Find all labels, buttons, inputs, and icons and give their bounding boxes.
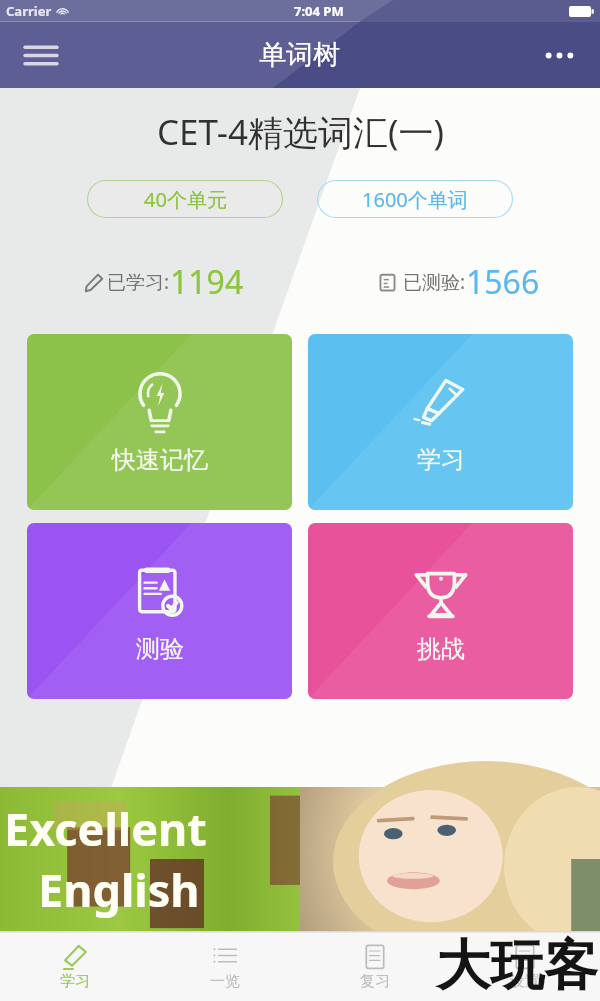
staticText: 已学习:	[107, 269, 170, 295]
staticText: 复习	[360, 972, 390, 991]
staticText: 挑战	[417, 634, 465, 664]
staticText: 学习	[60, 972, 90, 991]
button[interactable]: More options	[532, 28, 586, 82]
staticText: 测验	[136, 634, 184, 664]
staticText: 一览	[210, 972, 240, 991]
staticText: Excellent	[4, 798, 207, 859]
staticText: CET-4精选词汇(一)	[157, 108, 444, 156]
button[interactable]: Menu	[14, 28, 68, 82]
button[interactable]: 测验	[27, 523, 292, 699]
staticText: 单词树	[259, 38, 340, 72]
button[interactable]: 复习	[300, 931, 450, 1001]
button[interactable]: Excellent English banner	[0, 787, 600, 931]
staticText: 1194	[170, 260, 244, 304]
staticText: 40个单元	[144, 186, 227, 213]
button[interactable]: 一览	[150, 931, 300, 1001]
staticText: 快速记忆	[112, 445, 208, 475]
button[interactable]: 挑战	[308, 523, 573, 699]
button[interactable]: 设置	[450, 931, 600, 1001]
staticText: 学习	[417, 445, 465, 475]
button[interactable]: 学习	[0, 931, 150, 1001]
button[interactable]: 快速记忆	[27, 334, 292, 510]
staticText: 已测验:	[403, 269, 466, 295]
staticText: 设置	[510, 972, 540, 991]
staticText: 大玩客	[436, 932, 598, 1000]
staticText: 7:04 PM	[294, 2, 344, 20]
staticText: English	[38, 859, 200, 920]
button[interactable]: 学习	[308, 334, 573, 510]
staticText: 1566	[466, 260, 540, 304]
button[interactable]: 1600个单词	[317, 180, 513, 218]
button[interactable]: 40个单元	[87, 180, 283, 218]
staticText: Carrier	[6, 2, 52, 20]
staticText: 1600个单词	[362, 186, 468, 213]
